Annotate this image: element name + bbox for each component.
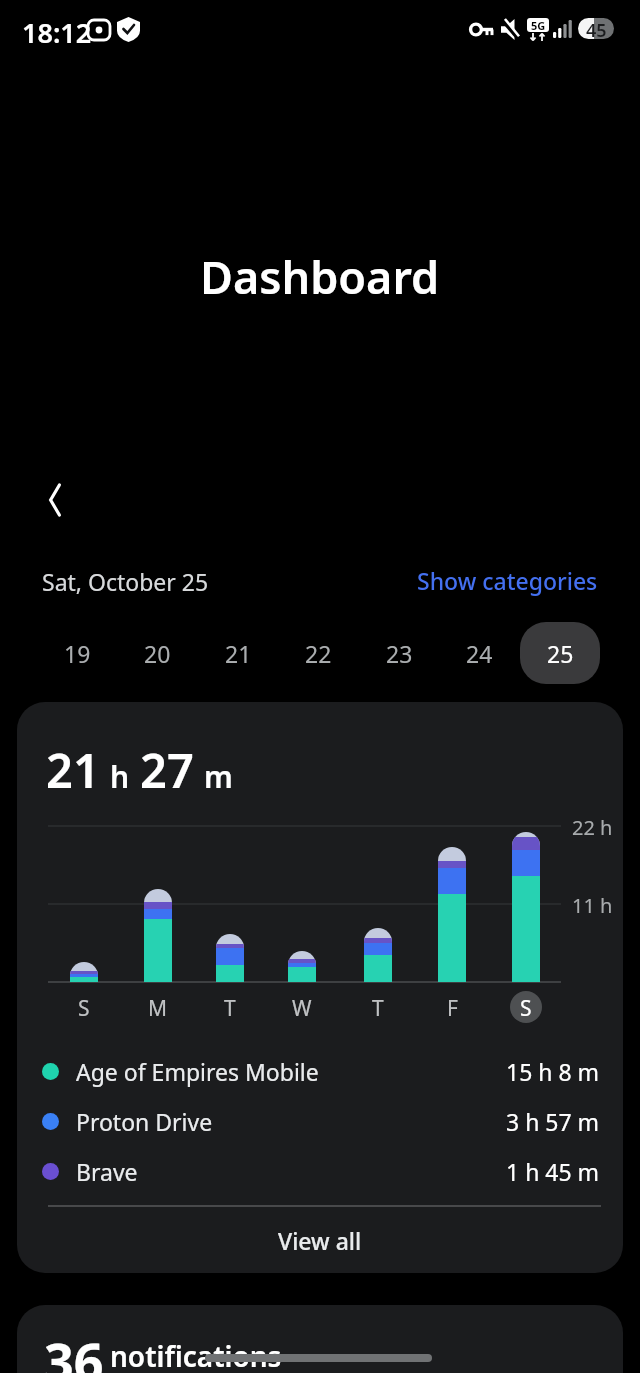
staticText: S <box>78 994 90 1020</box>
staticText: S <box>520 994 532 1020</box>
staticText: Proton Drive <box>76 1106 213 1137</box>
button[interactable]: Brave <box>0 1147 640 1195</box>
button[interactable] <box>17 1305 623 1373</box>
staticText: 23 <box>386 638 413 669</box>
staticText: W <box>292 994 312 1020</box>
staticText: 1 h 45 m <box>506 1156 600 1187</box>
button[interactable]: 25 <box>520 623 600 683</box>
staticText: 15 h 8 m <box>506 1056 600 1087</box>
button[interactable]: 23 <box>359 623 439 683</box>
staticText: Show categories <box>417 565 598 596</box>
button[interactable]: 20 <box>117 623 197 683</box>
staticText: 3 h 57 m <box>506 1106 600 1137</box>
staticText: 45 <box>586 18 607 39</box>
staticText: Brave <box>76 1156 138 1187</box>
staticText: 11 h <box>572 892 613 919</box>
staticText: T <box>224 994 236 1020</box>
staticText: 27 <box>140 738 194 800</box>
staticText: 21 <box>46 738 100 800</box>
button[interactable]: Proton Drive <box>0 1097 640 1145</box>
staticText: m <box>204 756 233 797</box>
staticText: 24 <box>466 638 493 669</box>
staticText: 25 <box>547 638 574 669</box>
staticText: 20 <box>144 638 171 669</box>
button[interactable]: View all <box>254 1217 386 1264</box>
staticText: h <box>110 756 130 797</box>
button[interactable]: 24 <box>439 623 519 683</box>
staticText: 22 h <box>572 814 613 841</box>
button[interactable]: 21 <box>198 623 278 683</box>
staticText: T <box>372 994 384 1020</box>
staticText: Sat, October 25 <box>42 566 209 597</box>
staticText: F <box>447 994 458 1020</box>
staticText: 36 <box>44 1325 104 1373</box>
staticText: 21 <box>225 638 252 669</box>
staticText: Age of Empires Mobile <box>76 1056 319 1087</box>
staticText: notifications <box>110 1337 282 1373</box>
staticText: View all <box>278 1225 362 1256</box>
staticText: 18:12 <box>22 14 92 51</box>
staticText: 22 <box>305 638 332 669</box>
button[interactable]: Age of Empires Mobile <box>0 1047 640 1095</box>
button[interactable]: Show categories <box>417 565 598 596</box>
staticText: 5G <box>531 18 546 32</box>
staticText: 19 <box>64 638 91 669</box>
button[interactable]: 22 <box>278 623 358 683</box>
staticText: Dashboard <box>200 246 440 307</box>
button[interactable]: 19 <box>37 623 117 683</box>
staticText: M <box>148 994 168 1020</box>
button[interactable] <box>30 475 80 525</box>
